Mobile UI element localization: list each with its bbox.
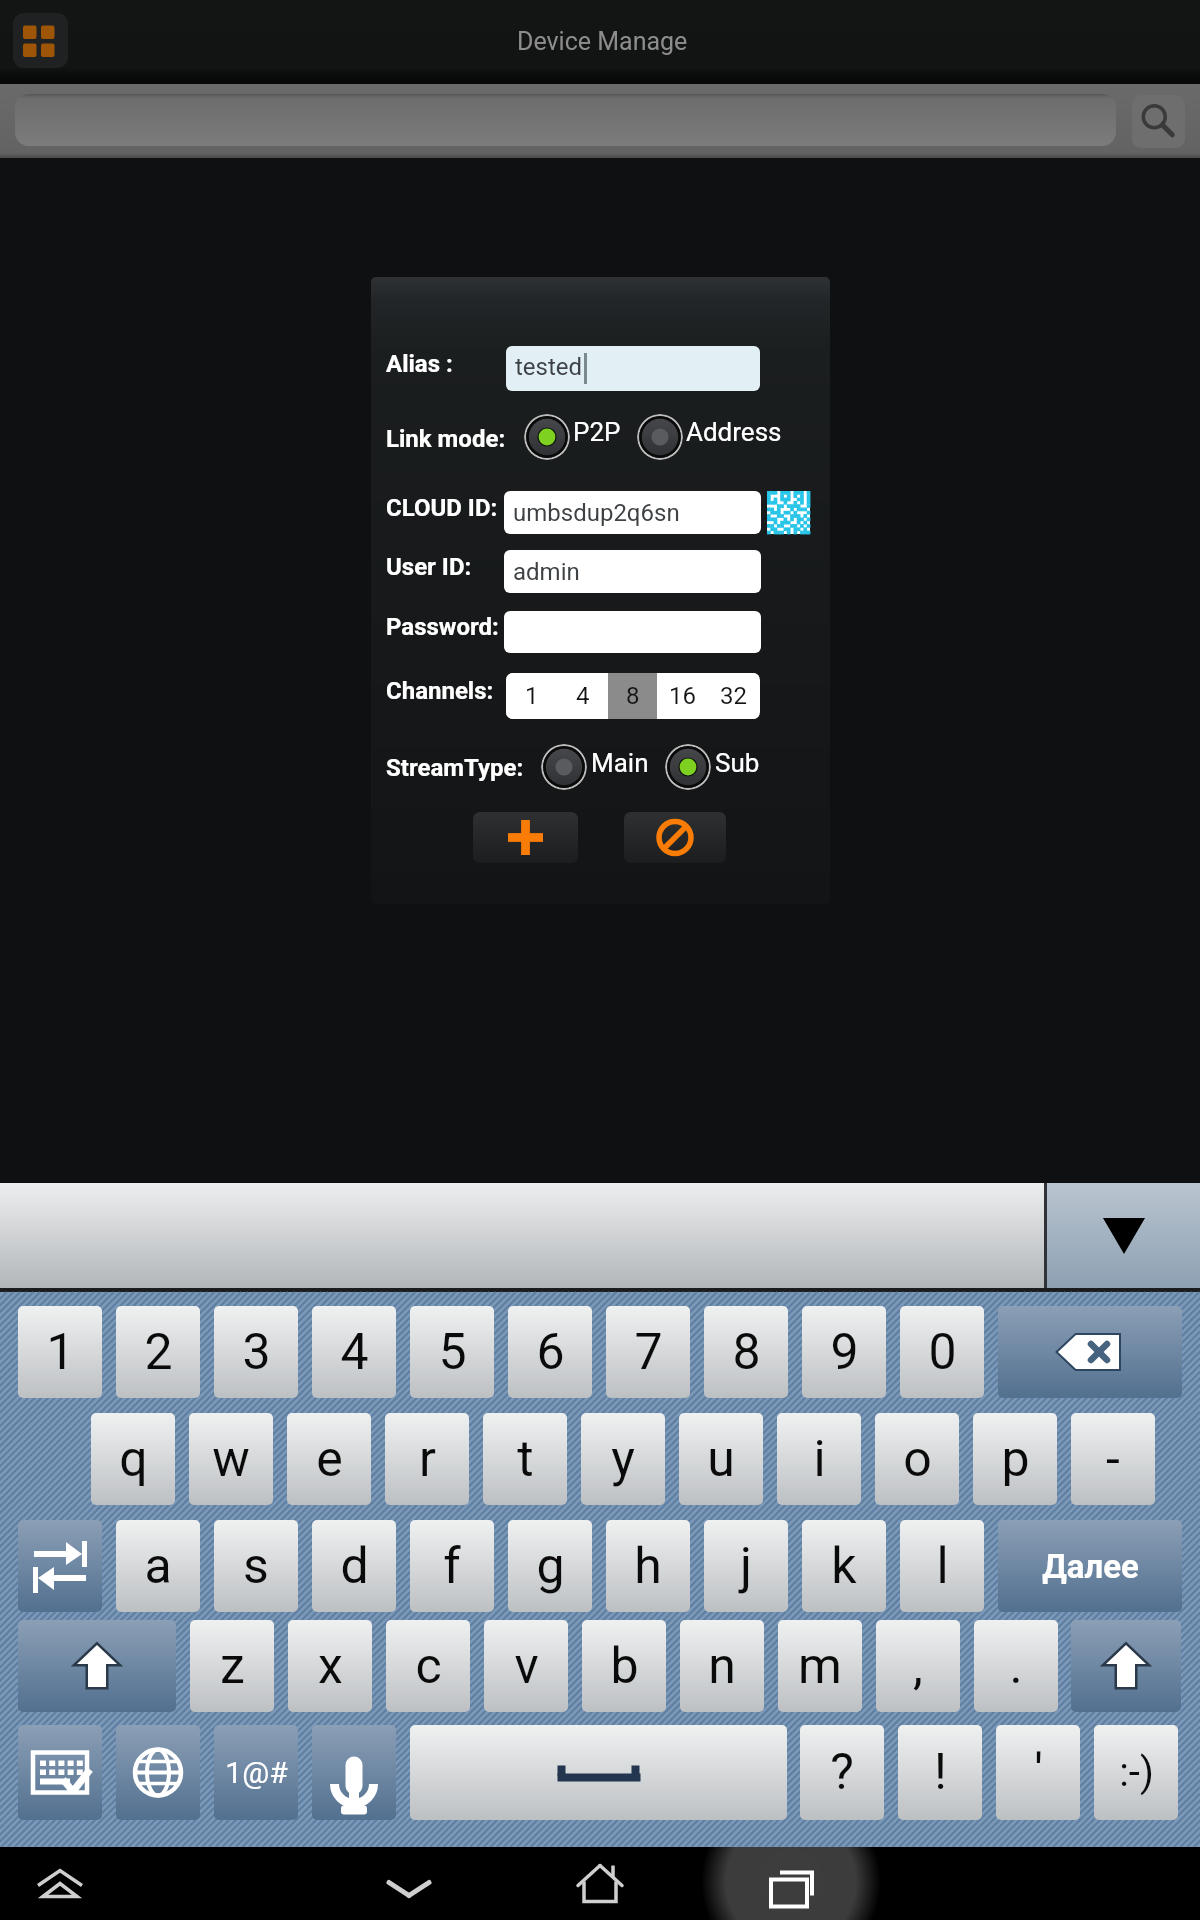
staticText: 1@# (225, 1755, 288, 1790)
button[interactable]: 3 (214, 1306, 298, 1398)
button[interactable]: 32 (708, 673, 759, 719)
staticText: w (212, 1430, 250, 1489)
staticText: ? (830, 1743, 854, 1802)
staticText: y (611, 1430, 635, 1489)
button[interactable]: 16 (657, 673, 708, 719)
staticText: 2 (144, 1323, 173, 1382)
button[interactable]: Selected (665, 744, 711, 790)
button[interactable]: - (1071, 1413, 1155, 1505)
button[interactable]: tab (18, 1520, 102, 1612)
button[interactable]: Not selected (541, 744, 587, 790)
staticText: 6 (536, 1323, 565, 1382)
button[interactable]: kb (18, 1725, 102, 1820)
button[interactable]: Back (14, 1847, 106, 1920)
staticText: 7 (634, 1323, 663, 1382)
button[interactable]: f (410, 1520, 494, 1612)
button[interactable]: w (189, 1413, 273, 1505)
button[interactable]: a (116, 1520, 200, 1612)
staticText: n (708, 1637, 736, 1696)
button[interactable]: ' (996, 1725, 1080, 1820)
staticText: 8 (626, 682, 640, 710)
button[interactable]: Input (504, 611, 761, 653)
button[interactable]: u (679, 1413, 763, 1505)
button[interactable]: Home (554, 1847, 646, 1920)
button[interactable]: mic (312, 1725, 396, 1820)
button[interactable]: 7 (606, 1306, 690, 1398)
button[interactable]: Apps (13, 13, 68, 68)
button[interactable]: 4 (312, 1306, 396, 1398)
staticText: m (798, 1637, 842, 1696)
button[interactable]: shift (1071, 1620, 1181, 1712)
button[interactable]: i (777, 1413, 861, 1505)
button[interactable]: bksp (998, 1306, 1182, 1398)
staticText: 5 (438, 1323, 467, 1382)
button[interactable]: t (483, 1413, 567, 1505)
button[interactable]: c (386, 1620, 470, 1712)
button[interactable]: Search (1132, 95, 1185, 148)
button[interactable]: d (312, 1520, 396, 1612)
button[interactable]: m (778, 1620, 862, 1712)
button[interactable]: Suggestions (0, 1183, 1044, 1288)
button[interactable]: Selected (524, 414, 570, 460)
button[interactable]: 8 (704, 1306, 788, 1398)
button[interactable]: Далее (998, 1520, 1182, 1612)
staticText: s (243, 1537, 269, 1596)
button[interactable]: b (582, 1620, 666, 1712)
button[interactable]: shift (18, 1620, 176, 1712)
button[interactable]: o (875, 1413, 959, 1505)
button[interactable]: k (802, 1520, 886, 1612)
button[interactable]: tested (506, 346, 760, 391)
button[interactable]: Add (473, 812, 578, 863)
button[interactable]: j (704, 1520, 788, 1612)
button[interactable]: Not selected (637, 414, 683, 460)
button[interactable]: globe (116, 1725, 200, 1820)
button[interactable]: 2 (116, 1306, 200, 1398)
button[interactable]: n (680, 1620, 764, 1712)
button[interactable]: umbsdup2q6sn (504, 491, 761, 534)
staticText: j (740, 1537, 752, 1596)
staticText: - (1106, 1430, 1120, 1489)
button[interactable]: 8 (608, 673, 657, 719)
button[interactable]: Hide keyboard suggestions (1047, 1183, 1200, 1288)
button[interactable]: y (581, 1413, 665, 1505)
button[interactable]: Scan QR code (767, 491, 810, 534)
button[interactable]: g (508, 1520, 592, 1612)
button[interactable]: Recent apps (745, 1847, 837, 1920)
button[interactable]: l (900, 1520, 984, 1612)
button[interactable]: 1@# (214, 1725, 298, 1820)
staticText: ' (1034, 1743, 1043, 1802)
button[interactable]: z (190, 1620, 274, 1712)
button[interactable]: e (287, 1413, 371, 1505)
button[interactable]: Hide keyboard (363, 1847, 455, 1920)
button[interactable]: 0 (900, 1306, 984, 1398)
button[interactable]: h (606, 1520, 690, 1612)
button[interactable]: v (484, 1620, 568, 1712)
button[interactable]: x (288, 1620, 372, 1712)
staticText: x (318, 1637, 343, 1696)
button[interactable]: 4 (557, 673, 608, 719)
button[interactable]: . (974, 1620, 1058, 1712)
button[interactable]: admin (504, 550, 761, 593)
staticText: d (340, 1537, 369, 1596)
button[interactable]: s (214, 1520, 298, 1612)
button[interactable]: q (91, 1413, 175, 1505)
button[interactable]: 9 (802, 1306, 886, 1398)
button[interactable]: Cancel (624, 812, 726, 863)
button[interactable]: ? (800, 1725, 884, 1820)
button[interactable]: , (876, 1620, 960, 1712)
staticText: :-) (1119, 1749, 1154, 1796)
staticText: 4 (340, 1323, 369, 1382)
button[interactable]: r (385, 1413, 469, 1505)
button[interactable]: 5 (410, 1306, 494, 1398)
button[interactable]: Search field (15, 94, 1116, 146)
button[interactable]: space (410, 1725, 787, 1820)
button[interactable]: :-) (1094, 1725, 1178, 1820)
staticText: t (517, 1430, 534, 1489)
button[interactable]: 1 (506, 673, 557, 719)
staticText: StreamType: (386, 754, 524, 782)
staticText: umbsdup2q6sn (513, 499, 680, 527)
button[interactable]: p (973, 1413, 1057, 1505)
button[interactable]: ! (898, 1725, 982, 1820)
button[interactable]: 6 (508, 1306, 592, 1398)
button[interactable]: 1 (18, 1306, 102, 1398)
